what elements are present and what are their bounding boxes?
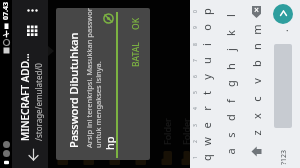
staticText: MINECRAFT ADD...: [18, 53, 32, 141]
button[interactable]: c: [243, 91, 270, 107]
button[interactable]: g: [217, 76, 244, 92]
button[interactable]: 1: [190, 150, 217, 166]
button[interactable]: Shift: [243, 138, 270, 166]
staticText: 5: [192, 91, 199, 94]
button[interactable]: 5: [190, 85, 217, 101]
button[interactable]: l: [217, 8, 244, 24]
button[interactable]: h: [217, 59, 244, 75]
staticText: p: [199, 8, 214, 15]
button[interactable]: f: [217, 93, 244, 109]
button[interactable]: x: [243, 108, 270, 124]
staticText: n: [249, 43, 264, 50]
staticText: BATAL: [130, 42, 142, 67]
staticText: q: [199, 154, 214, 161]
button[interactable]: Folder: [180, 0, 192, 168]
button[interactable]: 7: [190, 53, 217, 69]
button[interactable]: Folder: [50, 0, 76, 168]
button[interactable]: Folder: [154, 0, 180, 168]
staticText: j: [223, 48, 238, 51]
button[interactable]: d: [217, 110, 244, 126]
staticText: Folder: [161, 118, 173, 145]
button[interactable]: Back: [22, 144, 44, 166]
staticText: d: [223, 114, 238, 121]
button[interactable]: BATAL: [122, 36, 150, 73]
staticText: 2: [192, 140, 199, 143]
staticText: 9: [192, 26, 199, 29]
button[interactable]: s: [217, 127, 244, 143]
staticText: Password Dibutuhkan: [66, 32, 81, 148]
button[interactable]: m: [243, 22, 270, 38]
staticText: v: [249, 78, 264, 84]
button[interactable]: Folder: [76, 0, 102, 168]
button[interactable]: k: [217, 25, 244, 41]
staticText: y: [199, 74, 214, 80]
staticText: m: [249, 24, 264, 35]
button[interactable]: Enter: [273, 4, 293, 24]
button[interactable]: ?123: [270, 146, 297, 168]
staticText: .: [277, 29, 291, 32]
staticText: 1: [192, 156, 199, 159]
staticText: Folder: [180, 118, 192, 145]
button[interactable]: b: [243, 56, 270, 72]
button[interactable]: Folder: [128, 0, 154, 168]
staticText: g: [223, 80, 238, 87]
staticText: b: [249, 60, 264, 67]
button[interactable]: n: [243, 39, 270, 55]
staticText: 7: [192, 59, 199, 62]
staticText: 4: [192, 107, 199, 110]
staticText: OK: [130, 17, 142, 30]
staticText: h: [223, 63, 238, 70]
staticText: o: [199, 24, 214, 31]
button[interactable]: OK: [122, 11, 150, 36]
staticText: w: [199, 137, 214, 146]
staticText: r: [199, 106, 214, 111]
button[interactable]: More options: [23, 2, 41, 20]
staticText: Folder: [83, 118, 95, 145]
staticText: Folder: [109, 118, 121, 145]
staticText: 07.43: [1, 2, 11, 20]
staticText: a: [223, 148, 238, 155]
button[interactable]: 2: [190, 134, 217, 150]
staticText: f: [223, 99, 238, 103]
button[interactable]: z: [243, 125, 270, 141]
button[interactable]: 0: [190, 4, 217, 20]
staticText: 6: [192, 75, 199, 78]
button[interactable]: v: [243, 73, 270, 89]
staticText: c: [249, 96, 264, 102]
button[interactable]: 9: [190, 20, 217, 36]
staticText: 0: [192, 10, 199, 13]
button[interactable]: Folder: [102, 0, 128, 168]
button[interactable]: j: [217, 42, 244, 58]
button[interactable]: 8: [190, 37, 217, 53]
button[interactable]: 6: [190, 69, 217, 85]
button[interactable]: Grid view: [22, 21, 42, 41]
button[interactable]: Show password: [100, 11, 116, 27]
staticText: /storage/emulated/0: [33, 63, 44, 141]
staticText: z: [249, 130, 264, 136]
button[interactable]: 3: [190, 118, 217, 134]
staticText: u: [199, 57, 214, 64]
button[interactable]: a: [217, 144, 244, 160]
staticText: k: [223, 30, 238, 36]
staticText: x: [249, 113, 264, 119]
button[interactable]: .: [270, 22, 297, 40]
staticText: hp: [102, 136, 117, 150]
staticText: Arsip ini terenkripsi. Masukkan password…: [84, 8, 103, 148]
button[interactable]: 4: [190, 101, 217, 117]
staticText: i: [199, 43, 214, 46]
staticText: t: [199, 91, 214, 95]
staticText: l: [223, 14, 238, 17]
staticText: 3: [192, 124, 199, 127]
staticText: ?123: [279, 149, 289, 165]
staticText: e: [199, 122, 214, 129]
staticText: s: [223, 132, 238, 138]
button[interactable]: Backspace: [243, 0, 270, 25]
staticText: 8: [192, 43, 199, 46]
